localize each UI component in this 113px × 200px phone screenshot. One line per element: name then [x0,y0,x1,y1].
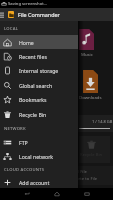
staticText: Bookmarks [19,96,47,103]
staticText: Local network [19,153,54,160]
button[interactable]: Local network [0,149,78,163]
staticText: LOCAL [4,26,19,32]
staticText: Internal storage [19,67,59,74]
button[interactable]: Back [11,188,42,200]
staticText: Recycle Bin [80,152,103,158]
button[interactable]: Add account [0,175,78,189]
button[interactable]: Open navigation drawer [0,8,7,21]
staticText: 1 / 14.8 GB [92,119,113,124]
staticText: Recent files [19,53,47,60]
staticText: NETWORK [4,126,26,132]
staticText: Music [81,51,93,57]
button[interactable]: Recent apps [72,188,102,200]
staticText: ete to File [78,176,98,182]
button[interactable]: Home [0,35,78,49]
staticText: Recycle Bin [19,111,47,118]
staticText: Global search [19,82,53,89]
button[interactable]: Global search [0,78,78,92]
staticText: CLOUD ACCOUNTS [4,167,45,173]
staticText: Add account [19,179,50,186]
staticText: FTP [19,139,28,146]
button[interactable]: Bookmarks [0,92,78,106]
button[interactable]: Recent files [0,49,78,63]
button[interactable]: Recycle Bin [0,107,78,121]
staticText: File Commander [18,11,60,18]
staticText: Home [19,39,34,46]
staticText: Downloads [79,94,102,100]
button[interactable]: Internal storage [0,63,78,77]
button[interactable]: FTP [0,135,78,149]
staticText: Saving screenshot… [8,1,48,7]
staticText: l File [78,169,87,175]
button[interactable]: Home [42,188,72,200]
